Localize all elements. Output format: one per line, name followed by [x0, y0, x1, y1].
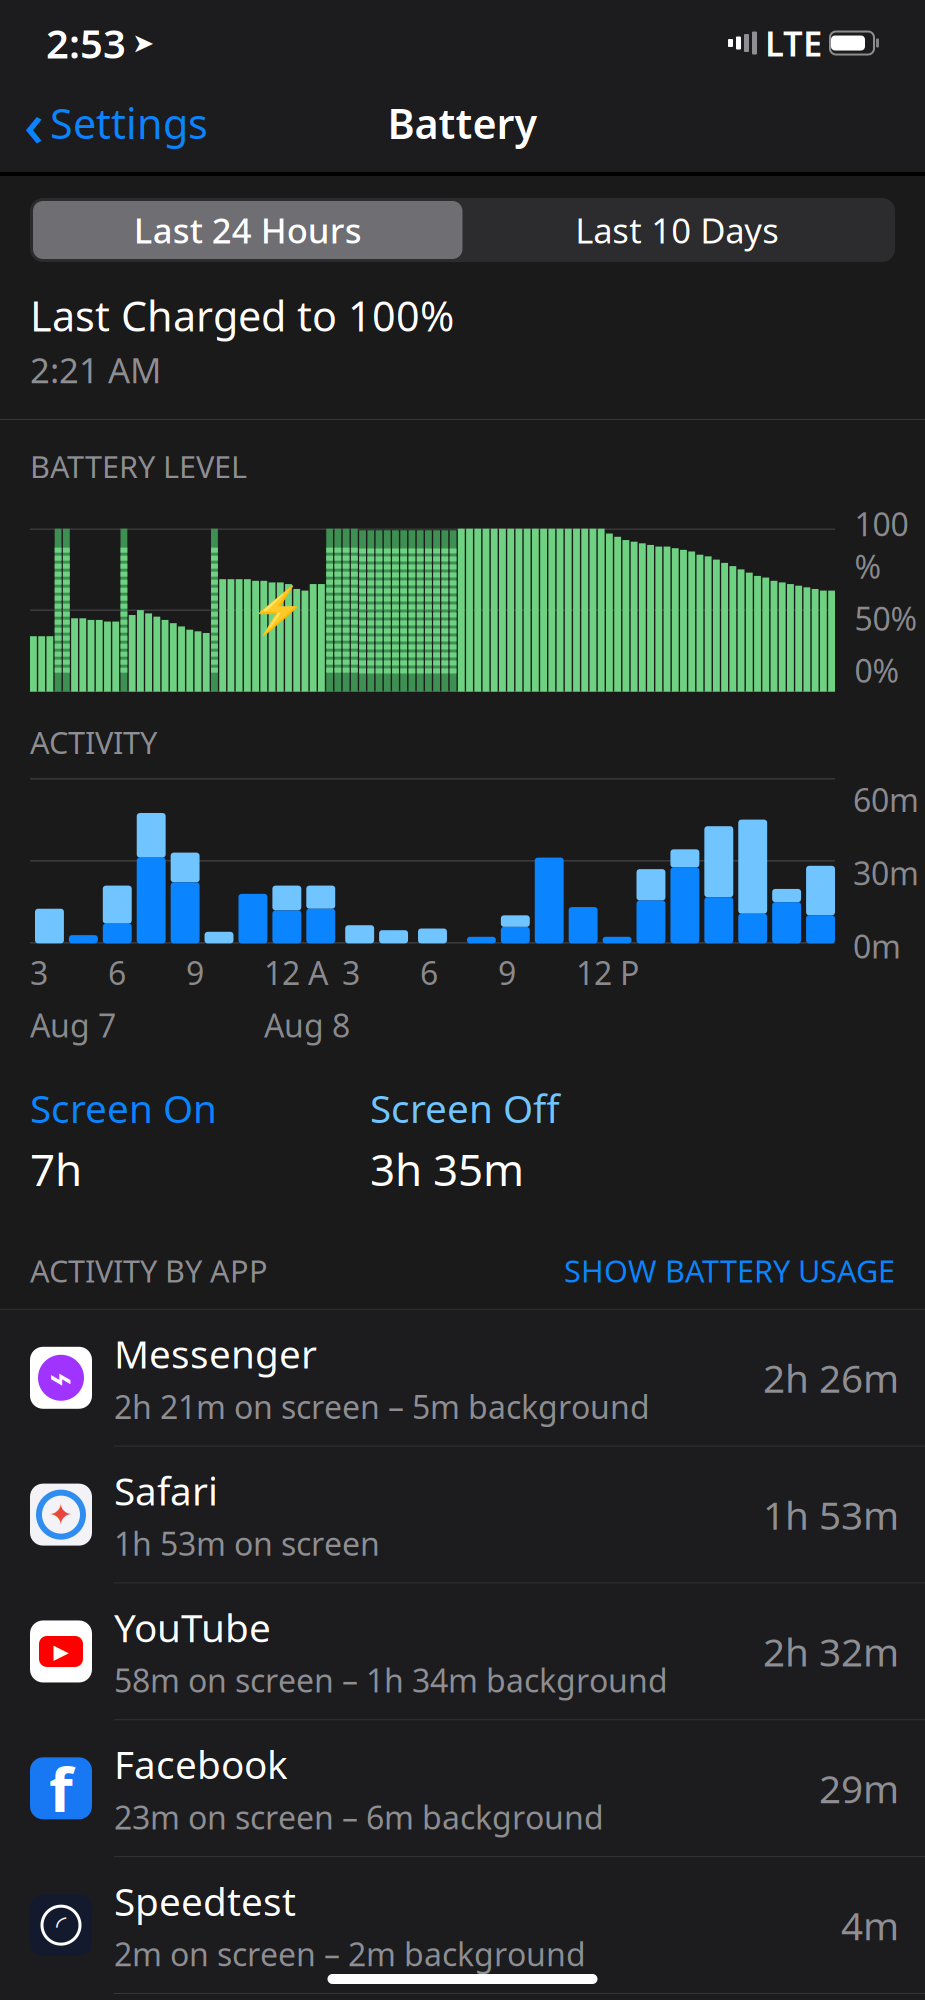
- button[interactable]: ◜: [0, 1857, 925, 1994]
- staticText: YouTube: [114, 1602, 271, 1653]
- staticText: 2m on screen – 2m background: [114, 1933, 586, 1975]
- staticText: 12 A: [264, 951, 328, 994]
- staticText: 2:21 AM: [30, 347, 161, 393]
- staticText: 30m: [853, 852, 919, 894]
- staticText: 6: [420, 951, 438, 994]
- staticText: Safari: [114, 1465, 218, 1516]
- button[interactable]: Last 10 Days: [462, 201, 892, 259]
- staticText: 0%: [854, 649, 899, 692]
- staticText: 2h 32m: [763, 1626, 899, 1677]
- staticText: 60m: [853, 778, 919, 821]
- button[interactable]: ⌁: [0, 1310, 925, 1447]
- staticText: 2:53: [46, 16, 126, 69]
- staticText: Aug 7: [30, 1004, 116, 1046]
- staticText: 7h: [30, 1140, 82, 1198]
- staticText: LTE: [765, 20, 822, 66]
- staticText: Last 24 Hours: [134, 207, 362, 253]
- staticText: 2h 21m on screen – 5m background: [114, 1385, 650, 1428]
- staticText: 2h 26m: [763, 1352, 899, 1403]
- button[interactable]: ▶: [0, 1584, 925, 1720]
- staticText: 29m: [819, 1763, 899, 1814]
- button[interactable]: Last 24 Hours: [33, 201, 462, 259]
- staticText: BATTERY LEVEL: [30, 446, 247, 487]
- staticText: 9: [186, 951, 204, 994]
- staticText: f: [49, 1748, 73, 1829]
- staticText: 50%: [854, 597, 917, 640]
- staticText: 3: [342, 951, 360, 994]
- button[interactable]: ‹: [24, 76, 218, 170]
- staticText: Aug 8: [264, 1004, 350, 1046]
- staticText: Last Charged to 100%: [30, 288, 454, 343]
- staticText: Settings: [50, 96, 208, 150]
- staticText: 100%: [854, 503, 908, 588]
- staticText: 3h 35m: [370, 1140, 524, 1198]
- staticText: Screen On: [30, 1082, 217, 1134]
- staticText: ✦: [48, 1498, 73, 1531]
- staticText: 1h 53m: [763, 1489, 899, 1540]
- staticText: 4m: [841, 1899, 899, 1951]
- staticText: 23m on screen – 6m background: [114, 1796, 604, 1838]
- staticText: Screen Off: [370, 1082, 560, 1134]
- staticText: ▶: [53, 1640, 68, 1663]
- button[interactable]: SHOW BATTERY USAGE: [564, 1246, 895, 1295]
- staticText: 3: [30, 951, 48, 994]
- staticText: 58m on screen – 1h 34m background: [114, 1659, 668, 1701]
- button[interactable]: ✦: [0, 1447, 925, 1583]
- button[interactable]: f: [0, 1720, 925, 1857]
- staticText: Facebook: [114, 1738, 288, 1790]
- staticText: ACTIVITY: [30, 722, 157, 762]
- staticText: ⚡: [250, 584, 306, 636]
- staticText: ➤: [132, 28, 154, 58]
- staticText: 12 P: [576, 951, 639, 994]
- staticText: 1h 53m on screen: [114, 1522, 380, 1565]
- staticText: ◜: [56, 1910, 66, 1940]
- staticText: ACTIVITY BY APP: [30, 1250, 268, 1291]
- staticText: Messenger: [114, 1328, 317, 1379]
- staticText: ‹: [24, 82, 44, 164]
- staticText: ⌁: [49, 1355, 73, 1400]
- staticText: 6: [108, 951, 126, 994]
- staticText: 9: [498, 951, 516, 994]
- staticText: Speedtest: [114, 1875, 296, 1926]
- staticText: Battery: [387, 96, 537, 150]
- staticText: SHOW BATTERY USAGE: [564, 1250, 895, 1291]
- staticText: 0m: [853, 925, 901, 967]
- staticText: Last 10 Days: [575, 207, 779, 253]
